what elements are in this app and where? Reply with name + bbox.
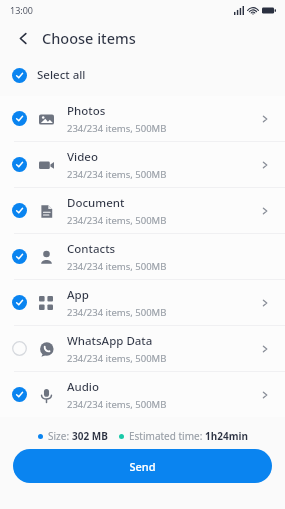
staticText: 234/234 items, 500MB [67,122,167,135]
button[interactable]: Audio [0,372,285,417]
button[interactable]: Photos [0,96,285,141]
button[interactable]: Send [13,449,272,483]
staticText: 234/234 items, 500MB [67,260,167,273]
staticText: 13:00 [10,4,34,16]
button[interactable]: Contacts [0,234,285,279]
staticText: 234/234 items, 500MB [67,352,167,365]
staticText: Size: [48,429,72,443]
staticText: 234/234 items, 500MB [67,306,167,319]
staticText: Estimated time: [129,429,205,443]
staticText: WhatsApp Data [67,333,153,349]
staticText: Send [129,459,156,474]
staticText: Video [67,149,98,165]
button[interactable]: Document [0,188,285,233]
staticText: 234/234 items, 500MB [67,214,167,227]
staticText: App [67,287,89,303]
staticText: Select all [37,67,86,83]
button[interactable]: Video [0,142,285,187]
button[interactable]: App [0,280,285,325]
staticText: Choose items [42,28,136,48]
staticText: Audio [67,379,100,395]
staticText: 1h24min [205,429,248,443]
staticText: Photos [67,103,106,119]
button[interactable]: WhatsApp Data [0,326,285,371]
staticText: 234/234 items, 500MB [67,398,167,411]
button[interactable]: Select all [0,56,285,94]
staticText: Document [67,195,125,211]
staticText: 302 MB [72,429,108,443]
staticText: 234/234 items, 500MB [67,168,167,181]
staticText: Contacts [67,241,116,257]
button[interactable]: Back [10,25,36,51]
